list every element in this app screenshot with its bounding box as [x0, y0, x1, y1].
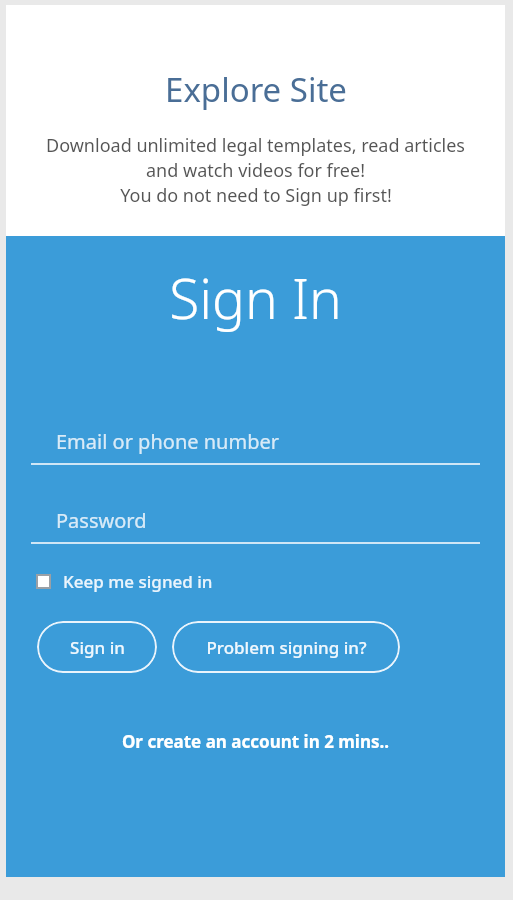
button[interactable]: Or create an account in 2 mins..	[6, 726, 505, 757]
button[interactable]: Problem signing in?	[172, 621, 400, 673]
staticText: Keep me signed in	[63, 570, 213, 593]
button[interactable]: Keep me signed in	[32, 564, 217, 599]
staticText: Sign In	[6, 260, 505, 335]
staticText: Email or phone number	[56, 428, 279, 455]
staticText: Problem signing in?	[206, 636, 367, 659]
staticText: You do not need to Sign up first!	[120, 183, 392, 208]
button[interactable]: Password	[31, 498, 480, 544]
button[interactable]: Email or phone number	[31, 419, 480, 465]
button[interactable]: Sign in	[37, 621, 157, 673]
staticText: Sign in	[70, 636, 125, 659]
staticText: Download unlimited legal templates, read…	[46, 133, 465, 158]
staticText: Explore Site	[165, 67, 347, 112]
staticText: and watch videos for free!	[146, 158, 365, 183]
staticText: Password	[56, 507, 147, 534]
